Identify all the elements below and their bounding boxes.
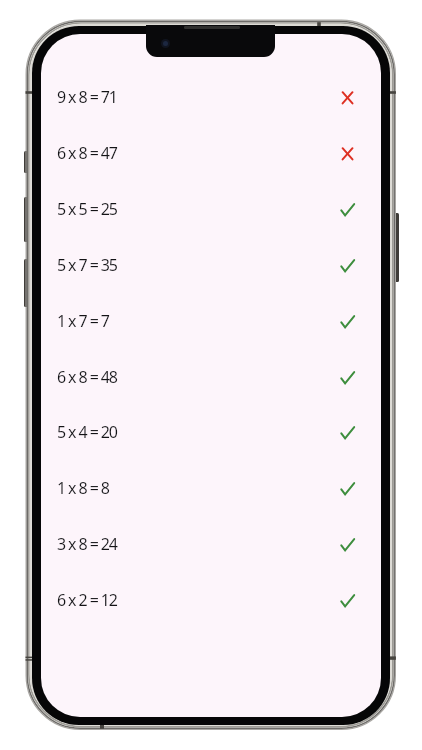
button[interactable]: 3 x 8 = 24 bbox=[41, 516, 381, 572]
staticText: 9 x 8 = 71 bbox=[57, 86, 117, 108]
button[interactable]: 9 x 8 = 71 bbox=[41, 69, 381, 125]
staticText: 1 x 7 = 7 bbox=[57, 310, 109, 332]
button[interactable]: 5 x 5 = 25 bbox=[41, 181, 381, 237]
staticText: 5 x 4 = 20 bbox=[57, 421, 117, 443]
other: Correct bbox=[340, 424, 356, 440]
staticText: 5 x 7 = 35 bbox=[57, 254, 117, 276]
other: Incorrect bbox=[340, 89, 356, 105]
staticText: 6 x 8 = 48 bbox=[57, 366, 117, 388]
button[interactable]: 1 x 8 = 8 bbox=[41, 460, 381, 516]
button[interactable]: 6 x 2 = 12 bbox=[41, 572, 381, 628]
other: Incorrect bbox=[340, 145, 356, 161]
other: Correct bbox=[340, 480, 356, 496]
other: Correct bbox=[340, 313, 356, 329]
other: Correct bbox=[340, 369, 356, 385]
staticText: 6 x 2 = 12 bbox=[57, 589, 117, 611]
button[interactable]: 1 x 7 = 7 bbox=[41, 293, 381, 349]
staticText: 3 x 8 = 24 bbox=[57, 533, 117, 555]
staticText: 5 x 5 = 25 bbox=[57, 198, 117, 220]
staticText: 1 x 8 = 8 bbox=[57, 477, 109, 499]
button[interactable]: 5 x 4 = 20 bbox=[41, 404, 381, 460]
other: Correct bbox=[340, 592, 356, 608]
button[interactable]: 6 x 8 = 48 bbox=[41, 349, 381, 405]
other: Correct bbox=[340, 201, 356, 217]
other: Correct bbox=[340, 536, 356, 552]
button[interactable]: 6 x 8 = 47 bbox=[41, 125, 381, 181]
staticText: 6 x 8 = 47 bbox=[57, 142, 117, 164]
button[interactable]: 5 x 7 = 35 bbox=[41, 237, 381, 293]
other: Correct bbox=[340, 257, 356, 273]
